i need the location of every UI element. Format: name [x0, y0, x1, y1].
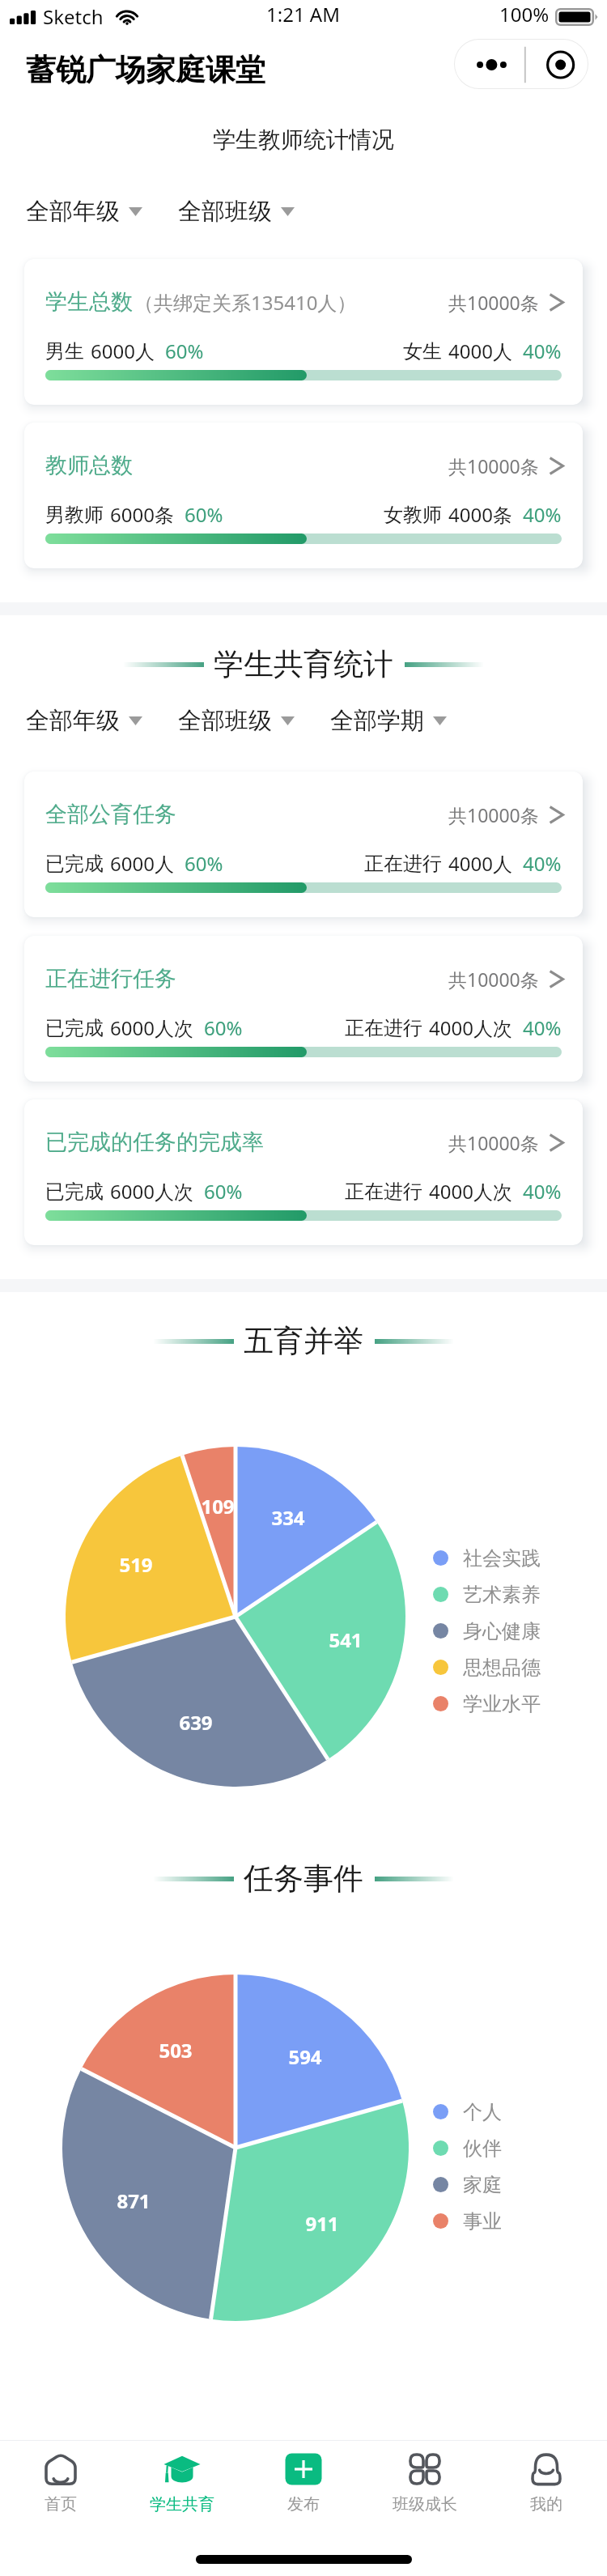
staticText: 519	[100, 1551, 172, 1578]
staticText: 40%	[523, 501, 562, 528]
button[interactable]: 全部年级	[26, 197, 142, 227]
staticText: 我的	[530, 2494, 562, 2514]
staticText: 334	[252, 1504, 325, 1531]
staticText: 共10000条	[448, 290, 539, 315]
staticText: 6000人	[91, 338, 155, 364]
staticText: 学生共育	[150, 2494, 214, 2514]
staticText: （共绑定关系135410人）	[134, 289, 357, 316]
button[interactable]: 我的	[486, 2441, 607, 2536]
staticText: 任务事件	[244, 1860, 363, 1898]
staticText: 已完成	[45, 852, 104, 876]
staticText: 共10000条	[448, 453, 539, 478]
button[interactable]: 家庭	[433, 2166, 502, 2203]
staticText: 639	[159, 1709, 232, 1736]
staticText: 4000条	[448, 501, 512, 528]
button[interactable]: 班级成长	[364, 2441, 486, 2536]
staticText: 家庭	[463, 2173, 502, 2197]
staticText: 4000人	[448, 338, 512, 364]
staticText: 503	[139, 2037, 212, 2064]
staticText: 共10000条	[448, 1130, 539, 1155]
button[interactable]: 首页	[0, 2441, 121, 2536]
staticText: 教师总数	[45, 452, 133, 479]
staticText: 60%	[185, 850, 223, 877]
staticText: 6000人次	[110, 1014, 193, 1041]
staticText: 学业水平	[463, 1692, 541, 1716]
staticText: 首页	[45, 2494, 77, 2514]
staticText: 4000人次	[429, 1014, 512, 1041]
button[interactable]: 正在进行任务	[24, 936, 583, 1082]
staticText: 全部公育任务	[45, 801, 176, 828]
staticText: 911	[286, 2210, 359, 2237]
button[interactable]: 全部学期	[330, 706, 447, 736]
button[interactable]: 全部年级	[26, 706, 142, 736]
button[interactable]: 学生共育	[121, 2441, 243, 2536]
staticText: 109	[181, 1493, 254, 1520]
staticText: 正在进行	[345, 1016, 422, 1040]
staticText: 发布	[287, 2494, 320, 2514]
staticText: 社会实践	[463, 1546, 541, 1571]
button[interactable]: 学生总数	[24, 259, 583, 405]
staticText: Sketch	[43, 3, 104, 30]
button[interactable]: 社会实践	[433, 1540, 541, 1576]
staticText: 事业	[463, 2209, 502, 2234]
staticText: 60%	[185, 501, 223, 528]
staticText: 60%	[204, 1014, 243, 1041]
staticText: 个人	[463, 2100, 502, 2124]
button[interactable]: 全部班级	[178, 706, 295, 736]
staticText: 全部班级	[178, 706, 272, 736]
staticText: 100%	[499, 1, 550, 28]
button[interactable]: 全部班级	[178, 197, 295, 227]
staticText: 正在进行	[345, 1180, 422, 1204]
staticText: 40%	[523, 1178, 562, 1205]
button[interactable]: 发布	[243, 2441, 364, 2536]
staticText: 6000人	[110, 850, 174, 877]
staticText: 40%	[523, 338, 562, 364]
staticText: 871	[97, 2187, 170, 2214]
staticText: 共10000条	[448, 802, 539, 827]
staticText: 60%	[165, 338, 204, 364]
staticText: 女教师	[384, 503, 442, 527]
staticText: 594	[269, 2043, 342, 2070]
button[interactable]: 事业	[433, 2203, 502, 2239]
staticText: 共10000条	[448, 967, 539, 992]
staticText: 全部年级	[26, 197, 120, 227]
button[interactable]: 全部公育任务	[24, 772, 583, 917]
staticText: 班级成长	[393, 2494, 457, 2514]
staticText: 全部学期	[330, 706, 424, 736]
staticText: 4000人	[448, 850, 512, 877]
staticText: 学生总数	[45, 288, 133, 316]
button[interactable]: 已完成的任务的完成率	[24, 1099, 583, 1245]
staticText: 40%	[523, 1014, 562, 1041]
staticText: 4000人次	[429, 1178, 512, 1205]
staticText: 全部班级	[178, 197, 272, 227]
staticText: 学生共育统计	[214, 645, 393, 683]
staticText: 全部年级	[26, 706, 120, 736]
staticText: 艺术素养	[463, 1583, 541, 1607]
button[interactable]: 思想品德	[433, 1649, 541, 1685]
staticText: 女生	[403, 339, 442, 363]
staticText: 正在进行	[364, 852, 442, 876]
staticText: 思想品德	[463, 1656, 541, 1680]
button[interactable]: 艺术素养	[433, 1576, 541, 1613]
staticText: 6000人次	[110, 1178, 193, 1205]
button[interactable]: 伙伴	[433, 2130, 502, 2166]
staticText: 已完成	[45, 1016, 104, 1040]
staticText: 蓄锐广场家庭课堂	[26, 51, 265, 89]
button[interactable]: 个人	[433, 2094, 502, 2130]
staticText: 正在进行任务	[45, 965, 176, 993]
button[interactable]: More options	[454, 39, 588, 89]
staticText: 40%	[523, 850, 562, 877]
staticText: 6000条	[110, 501, 174, 528]
staticText: 身心健康	[463, 1619, 541, 1643]
staticText: 1:21 AM	[266, 1, 340, 28]
staticText: 60%	[204, 1178, 243, 1205]
staticText: 已完成	[45, 1180, 104, 1204]
staticText: 男生	[45, 339, 84, 363]
button[interactable]: 学业水平	[433, 1685, 541, 1722]
staticText: 已完成的任务的完成率	[45, 1129, 264, 1156]
staticText: 男教师	[45, 503, 104, 527]
button[interactable]: 教师总数	[24, 423, 583, 568]
button[interactable]: 身心健康	[433, 1613, 541, 1649]
staticText: 学生教师统计情况	[0, 125, 607, 154]
staticText: 五育并举	[244, 1322, 363, 1360]
